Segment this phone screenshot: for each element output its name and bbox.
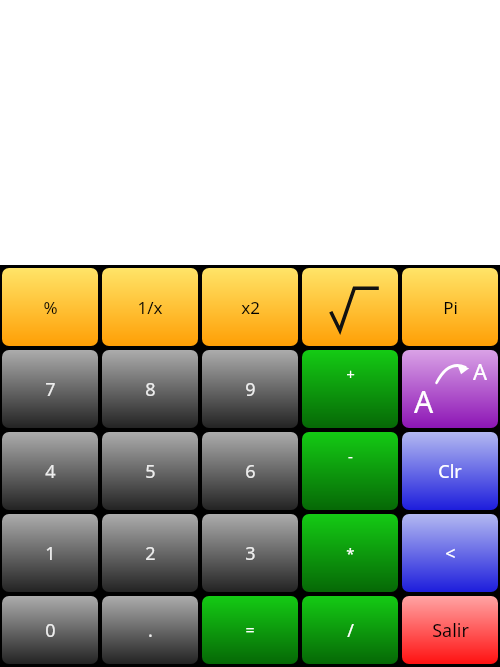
button[interactable]: Pi [402,268,498,346]
button[interactable]: Square root [302,268,398,346]
staticText: 7 [45,377,56,402]
staticText: A [473,356,488,386]
staticText: 3 [245,541,256,566]
button[interactable]: * [302,514,398,592]
button[interactable]: + [302,350,398,428]
staticText: 4 [45,459,56,484]
button[interactable]: % [2,268,98,346]
staticText: Pi [443,296,458,319]
button[interactable]: 1 [2,514,98,592]
button[interactable]: 8 [102,350,198,428]
button[interactable]: 5 [102,432,198,510]
button[interactable]: 4 [2,432,98,510]
button[interactable]: 7 [2,350,98,428]
staticText: 5 [145,459,156,484]
button[interactable]: 6 [202,432,298,510]
button[interactable]: / [302,596,398,664]
button[interactable]: Change font size [402,350,498,428]
button[interactable]: Salir [402,596,498,664]
staticText: % [43,296,58,319]
staticText: . [148,618,153,643]
staticText: + [346,364,355,384]
staticText: 1/x [137,296,163,319]
button[interactable]: x2 [202,268,298,346]
staticText: < [445,541,456,566]
staticText: x2 [241,296,260,319]
staticText: Salir [432,618,469,643]
button[interactable]: < [402,514,498,592]
button[interactable]: - [302,432,398,510]
staticText: 8 [145,377,156,402]
staticText: Clr [438,459,462,484]
button[interactable]: 2 [102,514,198,592]
button[interactable]: = [202,596,298,664]
button[interactable]: Clr [402,432,498,510]
staticText: = [245,619,255,641]
button[interactable]: 1/x [102,268,198,346]
staticText: 9 [245,377,256,402]
staticText: / [347,618,354,643]
staticText: 6 [245,459,256,484]
button[interactable]: 9 [202,350,298,428]
button[interactable]: 3 [202,514,298,592]
staticText: A [414,381,434,422]
staticText: 1 [45,541,56,566]
staticText: * [346,543,355,563]
staticText: - [348,446,353,466]
button[interactable]: 0 [2,596,98,664]
button[interactable]: . [102,596,198,664]
staticText: 0 [45,618,56,643]
staticText: 2 [145,541,156,566]
